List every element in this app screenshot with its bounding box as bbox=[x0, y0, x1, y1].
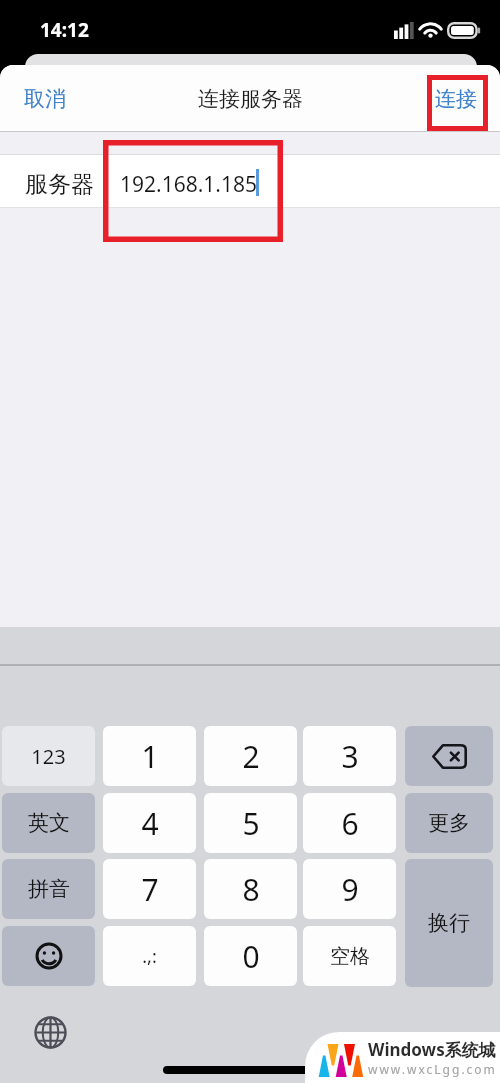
button[interactable]: 换行 bbox=[405, 859, 493, 987]
button[interactable]: 5 bbox=[204, 793, 297, 853]
button[interactable]: 取消 bbox=[10, 77, 80, 121]
staticText: 6 bbox=[341, 803, 359, 844]
staticText: .,: bbox=[142, 944, 157, 969]
staticText: Windows系统城 bbox=[368, 1038, 496, 1061]
staticText: 1 bbox=[141, 736, 159, 777]
staticText: 8 bbox=[242, 869, 260, 910]
button[interactable]: 空格 bbox=[303, 926, 396, 986]
staticText: 9 bbox=[341, 869, 359, 910]
staticText: 更多 bbox=[428, 810, 470, 836]
staticText: 3 bbox=[341, 736, 359, 777]
staticText: 英文 bbox=[28, 810, 70, 836]
staticText: 换行 bbox=[428, 910, 470, 936]
staticText: 7 bbox=[141, 869, 159, 910]
staticText: 连接服务器 bbox=[198, 86, 303, 112]
staticText: 192.168.1.185 bbox=[120, 170, 258, 199]
button[interactable]: Emoji bbox=[2, 926, 95, 986]
button[interactable]: 123 bbox=[2, 726, 95, 786]
staticText: 4 bbox=[141, 803, 159, 844]
button[interactable]: 英文 bbox=[2, 793, 95, 853]
button[interactable]: 0 bbox=[204, 926, 297, 986]
staticText: 5 bbox=[242, 803, 260, 844]
staticText: 服务器 bbox=[25, 170, 94, 199]
button[interactable]: Backspace bbox=[405, 726, 493, 786]
staticText: 连接 bbox=[435, 86, 477, 112]
staticText: 14:12 bbox=[40, 17, 89, 43]
staticText: 0 bbox=[242, 936, 260, 977]
button[interactable]: 3 bbox=[303, 726, 396, 786]
button[interactable]: 拼音 bbox=[2, 859, 95, 919]
button[interactable]: 1 bbox=[103, 726, 196, 786]
staticText: www.wxcLgg.com bbox=[368, 1061, 497, 1077]
staticText: 2 bbox=[242, 736, 260, 777]
button[interactable]: 连接 bbox=[425, 77, 487, 121]
staticText: 123 bbox=[31, 743, 66, 770]
button[interactable]: 4 bbox=[103, 793, 196, 853]
button[interactable]: 8 bbox=[204, 859, 297, 919]
button[interactable]: 9 bbox=[303, 859, 396, 919]
staticText: 空格 bbox=[330, 944, 370, 969]
button[interactable]: 更多 bbox=[405, 793, 493, 853]
button[interactable]: Change keyboard bbox=[30, 1012, 70, 1052]
button[interactable]: .,: bbox=[103, 926, 196, 986]
staticText: 拼音 bbox=[28, 876, 70, 902]
button[interactable]: 2 bbox=[204, 726, 297, 786]
button[interactable]: 6 bbox=[303, 793, 396, 853]
button[interactable]: 7 bbox=[103, 859, 196, 919]
staticText: 取消 bbox=[24, 86, 66, 112]
